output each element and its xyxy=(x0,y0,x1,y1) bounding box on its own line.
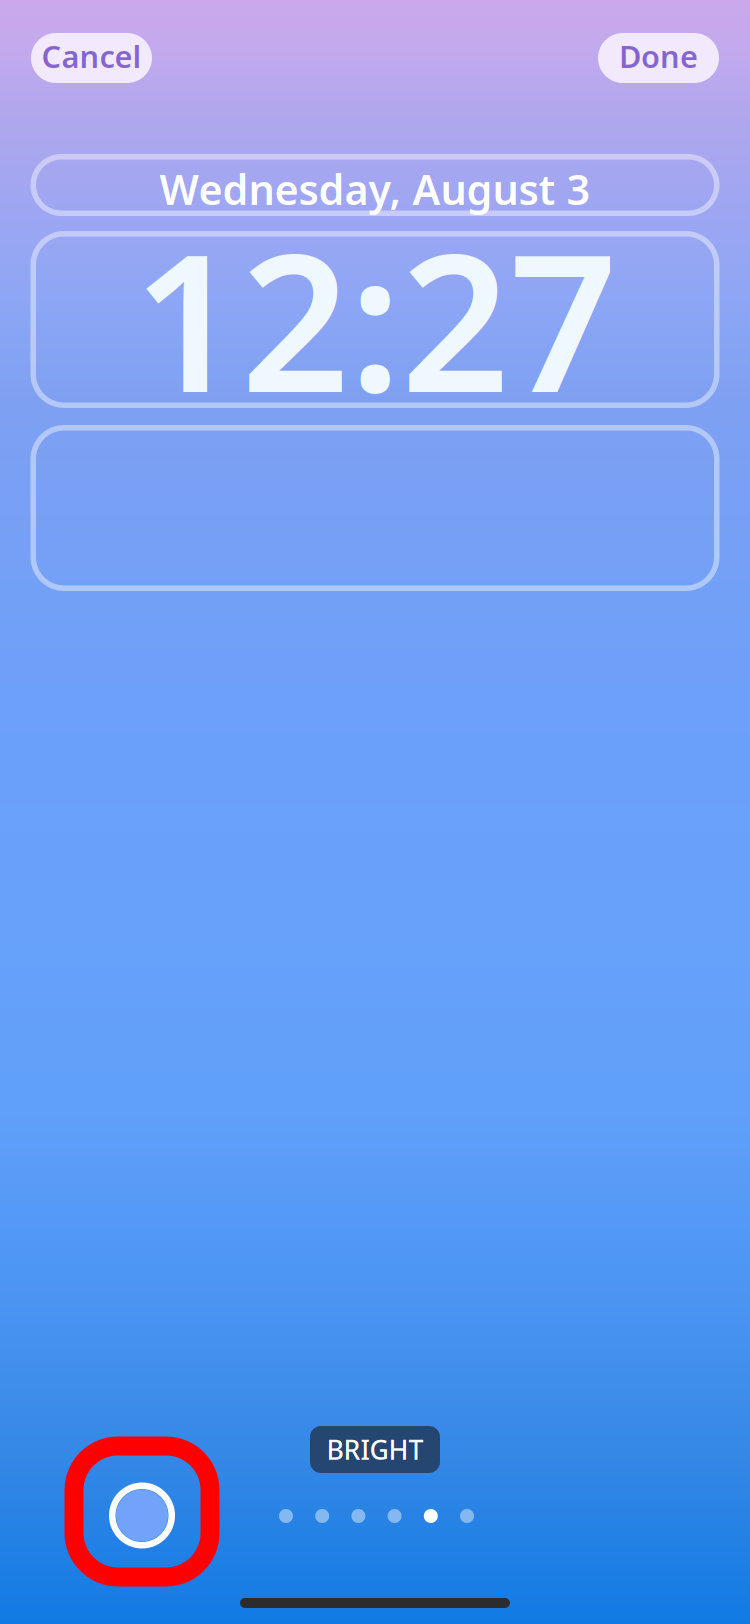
staticText: BRIGHT xyxy=(326,1432,423,1467)
staticText: 12:27 xyxy=(133,193,617,444)
button[interactable]: Date widget xyxy=(30,154,719,216)
button[interactable]: Add widgets xyxy=(30,425,719,591)
button[interactable]: Background colour xyxy=(64,1436,219,1586)
staticText: Done xyxy=(619,36,698,76)
staticText: Wednesday, August 3 xyxy=(159,162,590,216)
button[interactable]: Done xyxy=(598,33,719,83)
staticText: Cancel xyxy=(41,36,141,76)
button[interactable]: Clock xyxy=(30,231,719,408)
button[interactable]: Cancel xyxy=(31,33,152,83)
